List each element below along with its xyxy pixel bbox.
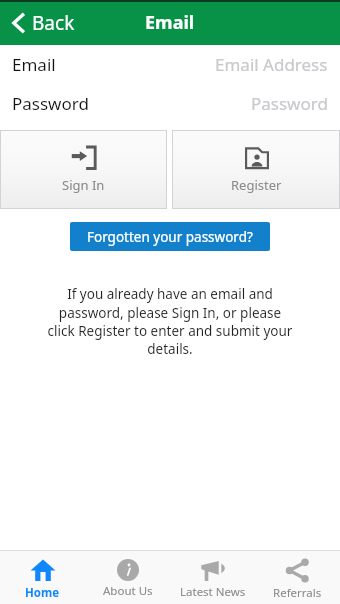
staticText: Sign In bbox=[62, 176, 105, 194]
other: Referrals bbox=[285, 558, 310, 583]
staticText: Forgotten your password? bbox=[87, 228, 253, 246]
staticText: If you already have an email and passwor… bbox=[44, 285, 296, 357]
button[interactable]: Register bbox=[172, 130, 340, 209]
button[interactable]: Referrals bbox=[255, 554, 340, 604]
staticText: About Us bbox=[103, 583, 153, 599]
staticText: Email bbox=[12, 53, 56, 76]
staticText: Referrals bbox=[273, 585, 322, 601]
staticText: Register bbox=[231, 176, 282, 194]
staticText: Latest News bbox=[180, 584, 246, 600]
staticText: Password bbox=[251, 92, 328, 115]
other: About Us bbox=[117, 559, 139, 581]
staticText: Email bbox=[145, 10, 195, 35]
button[interactable]: Password bbox=[0, 84, 340, 123]
button[interactable]: Sign In bbox=[0, 130, 167, 209]
button[interactable]: Back bbox=[8, 6, 79, 40]
staticText: Back bbox=[32, 10, 75, 36]
button[interactable]: Email bbox=[0, 45, 340, 84]
other: Home bbox=[30, 557, 56, 583]
staticText: Password bbox=[12, 92, 89, 115]
button[interactable]: About Us bbox=[85, 554, 170, 604]
other: Latest News bbox=[200, 558, 226, 582]
button[interactable]: Latest News bbox=[170, 554, 255, 604]
staticText: Email Address bbox=[215, 53, 328, 76]
staticText: Home bbox=[25, 585, 60, 601]
button[interactable]: Forgotten your password? bbox=[70, 222, 270, 251]
button[interactable]: Home bbox=[0, 554, 85, 604]
